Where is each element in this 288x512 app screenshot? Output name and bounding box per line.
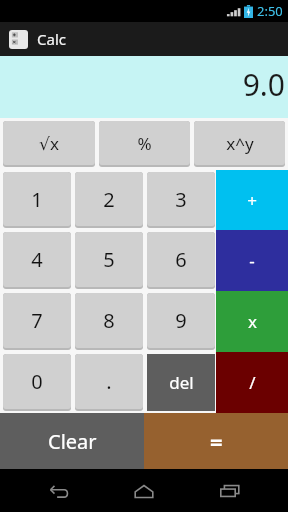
button[interactable]: Home bbox=[116, 471, 172, 511]
button[interactable]: 3 bbox=[147, 172, 215, 226]
button[interactable]: Clear bbox=[0, 413, 144, 469]
staticText: - bbox=[249, 249, 255, 272]
staticText: + bbox=[247, 189, 257, 212]
staticText: 2 bbox=[103, 186, 115, 213]
button[interactable]: 2 bbox=[75, 172, 143, 226]
button[interactable]: 6 bbox=[147, 232, 215, 287]
button[interactable]: 4 bbox=[3, 232, 71, 287]
button[interactable]: Back bbox=[30, 471, 86, 511]
button[interactable]: 5 bbox=[75, 232, 143, 287]
staticText: / bbox=[249, 371, 256, 394]
staticText: % bbox=[137, 132, 152, 155]
button[interactable]: + bbox=[216, 170, 288, 230]
staticText: 3 bbox=[175, 186, 187, 213]
button[interactable]: % bbox=[99, 121, 190, 165]
staticText: √x bbox=[39, 132, 59, 155]
staticText: . bbox=[106, 368, 112, 395]
button[interactable]: x bbox=[216, 291, 288, 352]
button[interactable]: 9 bbox=[147, 293, 215, 348]
staticText: 0 bbox=[31, 368, 43, 395]
staticText: 2:50 bbox=[257, 2, 283, 20]
button[interactable]: - bbox=[216, 230, 288, 291]
staticText: 6 bbox=[175, 246, 187, 273]
button[interactable]: x^y bbox=[194, 121, 285, 165]
button[interactable]: Recent apps bbox=[202, 471, 258, 511]
staticText: 5 bbox=[103, 246, 115, 273]
button[interactable]: 1 bbox=[3, 172, 71, 226]
staticText: 4 bbox=[31, 246, 43, 273]
button[interactable]: 0 bbox=[3, 354, 71, 409]
staticText: 1 bbox=[31, 186, 43, 213]
staticText: = bbox=[210, 426, 223, 456]
button[interactable]: 7 bbox=[3, 293, 71, 348]
staticText: 9.0 bbox=[242, 64, 285, 105]
staticText: x bbox=[248, 310, 257, 333]
staticText: 8 bbox=[103, 307, 115, 334]
staticText: del bbox=[169, 371, 194, 394]
button[interactable]: 8 bbox=[75, 293, 143, 348]
staticText: x^y bbox=[226, 132, 254, 155]
button[interactable]: √x bbox=[3, 121, 95, 165]
staticText: Clear bbox=[48, 428, 97, 455]
staticText: 9 bbox=[175, 307, 187, 334]
button[interactable]: = bbox=[144, 413, 288, 469]
button[interactable]: / bbox=[216, 352, 288, 413]
staticText: Calc bbox=[37, 29, 66, 49]
button[interactable]: del bbox=[147, 354, 215, 411]
button[interactable]: . bbox=[75, 354, 143, 409]
staticText: 7 bbox=[31, 307, 43, 334]
